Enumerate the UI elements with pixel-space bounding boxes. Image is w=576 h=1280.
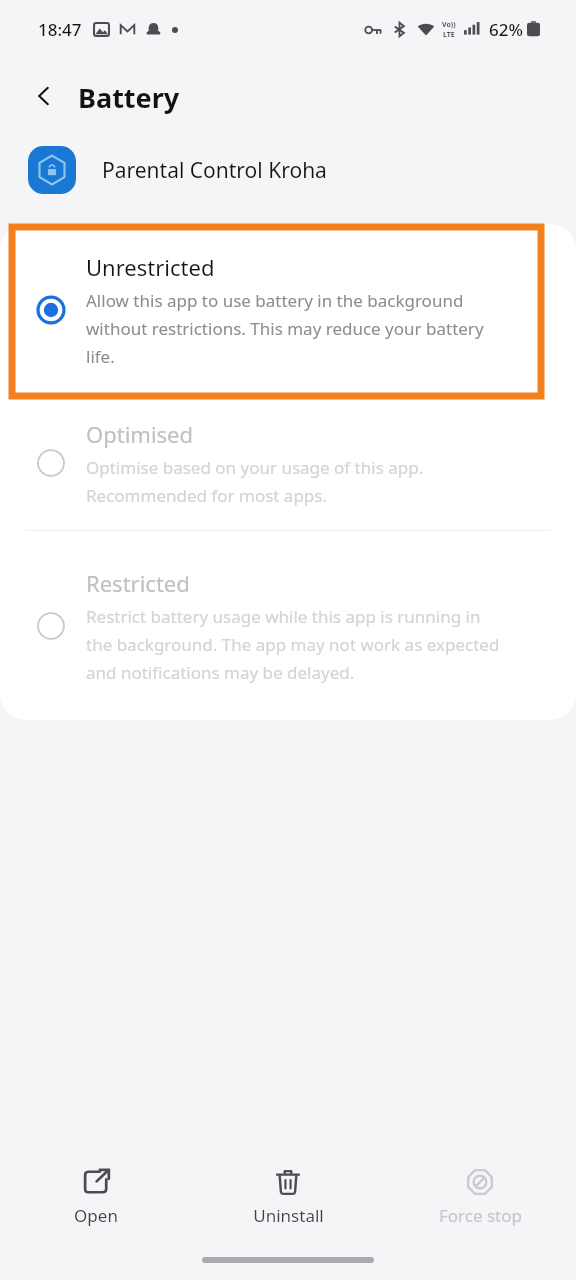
staticText: 62% [489,18,523,41]
staticText: Vo)) [442,20,456,30]
button[interactable]: Restricted [0,531,576,720]
button[interactable]: Uninstall [192,1154,384,1227]
button[interactable]: Open [0,1154,192,1227]
staticText: Force stop [439,1204,522,1227]
staticText: Restricted [86,568,190,598]
staticText: Uninstall [253,1204,324,1227]
staticText: Open [74,1204,118,1227]
staticText: Optimise based on your usage of this app… [86,456,506,507]
staticText: LTE [443,30,455,40]
staticText: Allow this app to use battery in the bac… [86,289,506,368]
staticText: Optimised [86,419,194,449]
staticText: 18:47 [38,18,82,41]
button[interactable]: Force stop [384,1154,576,1227]
button[interactable]: Parental Control Kroha [0,134,576,206]
staticText: Unrestricted [86,252,215,282]
button[interactable]: Optimised [0,396,576,530]
staticText: Battery [78,79,180,116]
button[interactable]: Back [22,74,66,118]
staticText: Parental Control Kroha [102,156,327,185]
button[interactable]: Unrestricted [0,224,576,396]
staticText: Restrict battery usage while this app is… [86,605,506,684]
